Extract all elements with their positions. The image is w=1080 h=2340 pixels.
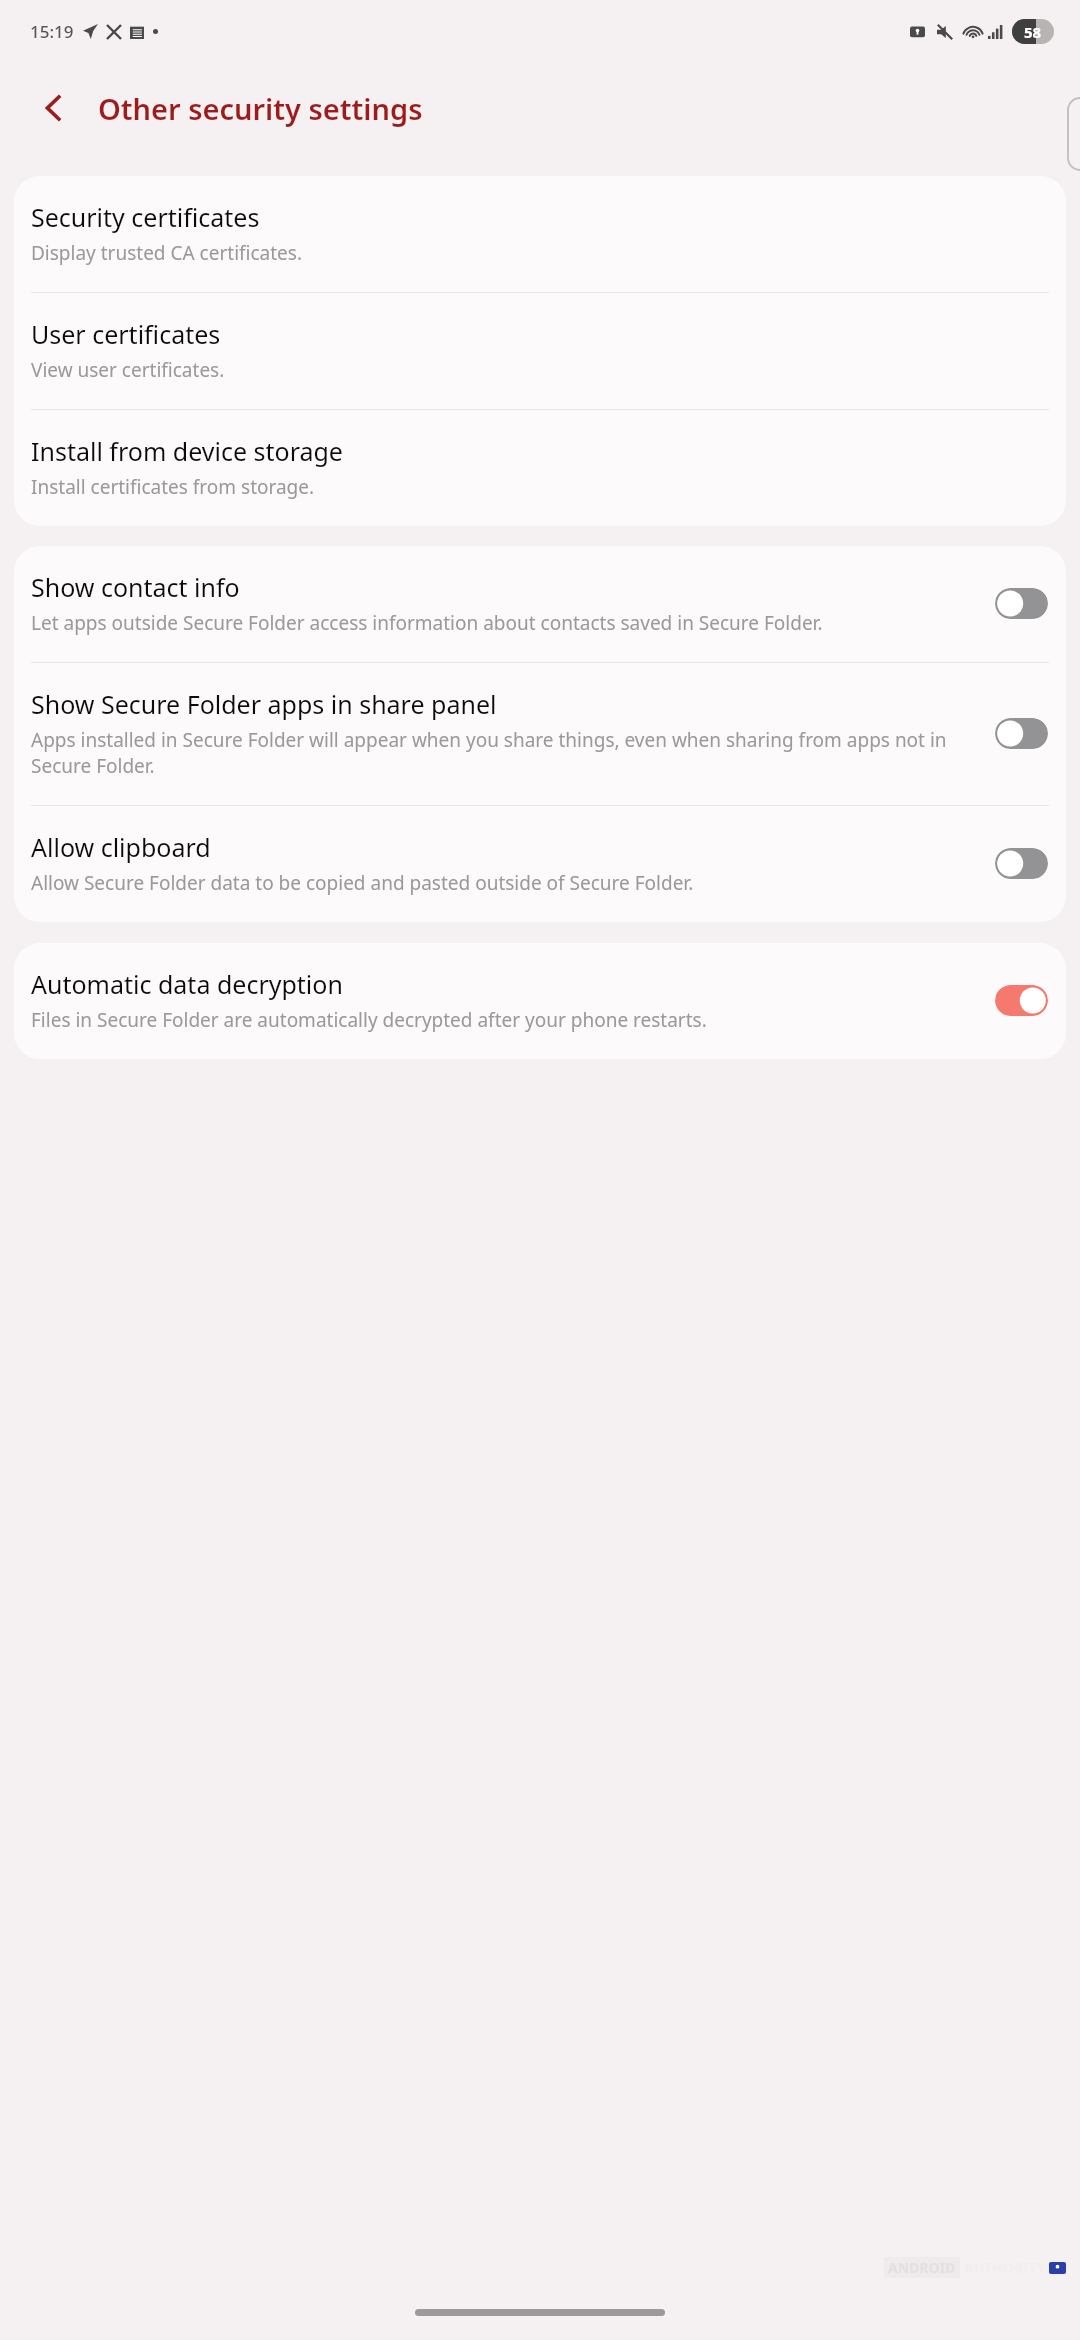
staticText: Allow Secure Folder data to be copied an… xyxy=(31,870,694,896)
button[interactable]: Toggle off xyxy=(995,588,1048,619)
staticText: 58 xyxy=(1024,22,1042,42)
staticText: Let apps outside Secure Folder access in… xyxy=(31,610,823,636)
staticText: Allow clipboard xyxy=(31,830,211,864)
staticText: Install from device storage xyxy=(31,434,343,468)
button[interactable]: Security certificates xyxy=(14,176,1066,292)
staticText: Files in Secure Folder are automatically… xyxy=(31,1007,707,1033)
staticText: User certificates xyxy=(31,317,221,351)
staticText: Install certificates from storage. xyxy=(31,474,315,500)
button[interactable]: Install from device storage xyxy=(14,410,1066,526)
button[interactable]: User certificates xyxy=(14,293,1066,409)
button[interactable]: Show Secure Folder apps in share panel xyxy=(14,663,1066,805)
staticText: View user certificates. xyxy=(31,357,225,383)
staticText: Automatic data decryption xyxy=(31,967,343,1001)
staticText: Other security settings xyxy=(98,89,423,128)
button[interactable]: Back xyxy=(24,78,84,138)
staticText: Security certificates xyxy=(31,200,260,234)
staticText: Show contact info xyxy=(31,570,240,604)
button[interactable]: Toggle off xyxy=(995,848,1048,879)
staticText: ANDROID xyxy=(888,2258,956,2277)
button[interactable]: Toggle on xyxy=(995,985,1048,1016)
staticText: Show Secure Folder apps in share panel xyxy=(31,687,497,721)
button[interactable]: Automatic data decryption xyxy=(14,943,1066,1059)
staticText: 15:19 xyxy=(30,20,74,43)
staticText: Apps installed in Secure Folder will app… xyxy=(31,727,979,779)
button[interactable]: Toggle off xyxy=(995,718,1048,749)
button[interactable]: Show contact info xyxy=(14,546,1066,662)
button[interactable]: Allow clipboard xyxy=(14,806,1066,922)
staticText: Display trusted CA certificates. xyxy=(31,240,303,266)
